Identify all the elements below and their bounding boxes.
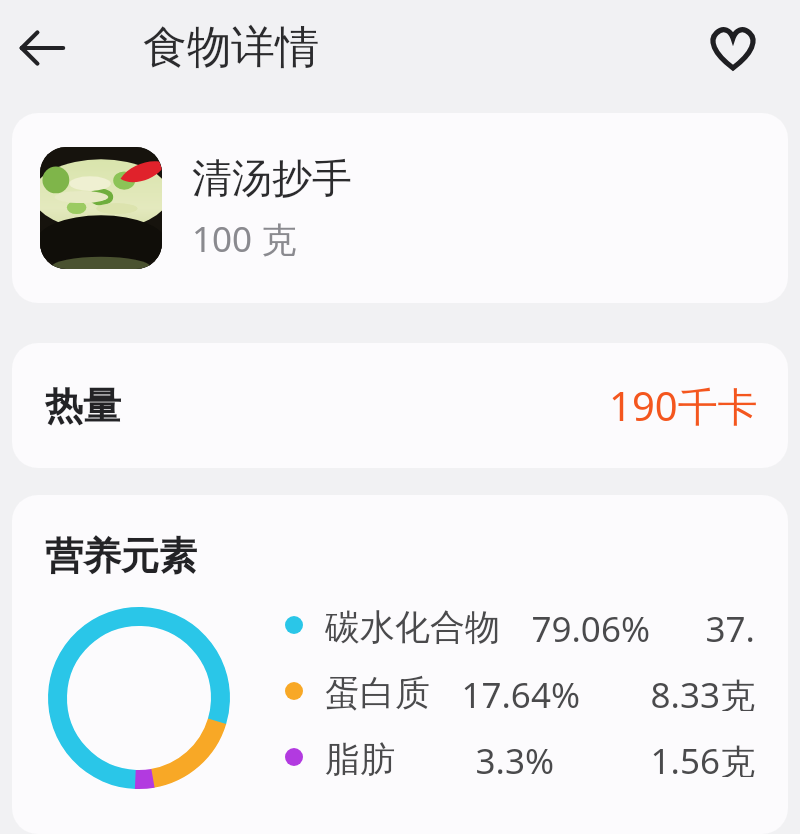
staticText: 190千卡 [609, 378, 758, 433]
staticText: 食物详情 [143, 20, 319, 75]
button[interactable]: 蛋白质 [285, 671, 755, 711]
staticText: 17.64% [430, 671, 580, 711]
button[interactable]: 碳水化合物 [285, 605, 755, 645]
button[interactable]: 热量 [12, 343, 788, 468]
staticText: 1.56克 [600, 737, 755, 777]
staticText: 8.33克 [626, 671, 755, 711]
button[interactable]: Back [8, 14, 76, 82]
staticText: 清汤抄手 [192, 153, 352, 203]
staticText: 3.3% [404, 737, 554, 777]
button[interactable]: 脂肪 [285, 737, 755, 777]
staticText: 79.06% [500, 605, 650, 645]
button[interactable]: 清汤抄手 [12, 113, 788, 303]
staticText: 蛋白质 [325, 671, 430, 711]
staticText: 营养元素 [45, 532, 197, 580]
staticText: 37.33克 [696, 605, 755, 645]
staticText: 热量 [45, 382, 121, 430]
staticText: 碳水化合物 [325, 605, 500, 645]
staticText: 100 克 [192, 215, 297, 263]
staticText: 脂肪 [325, 737, 395, 777]
button[interactable]: Favorite [700, 15, 766, 81]
